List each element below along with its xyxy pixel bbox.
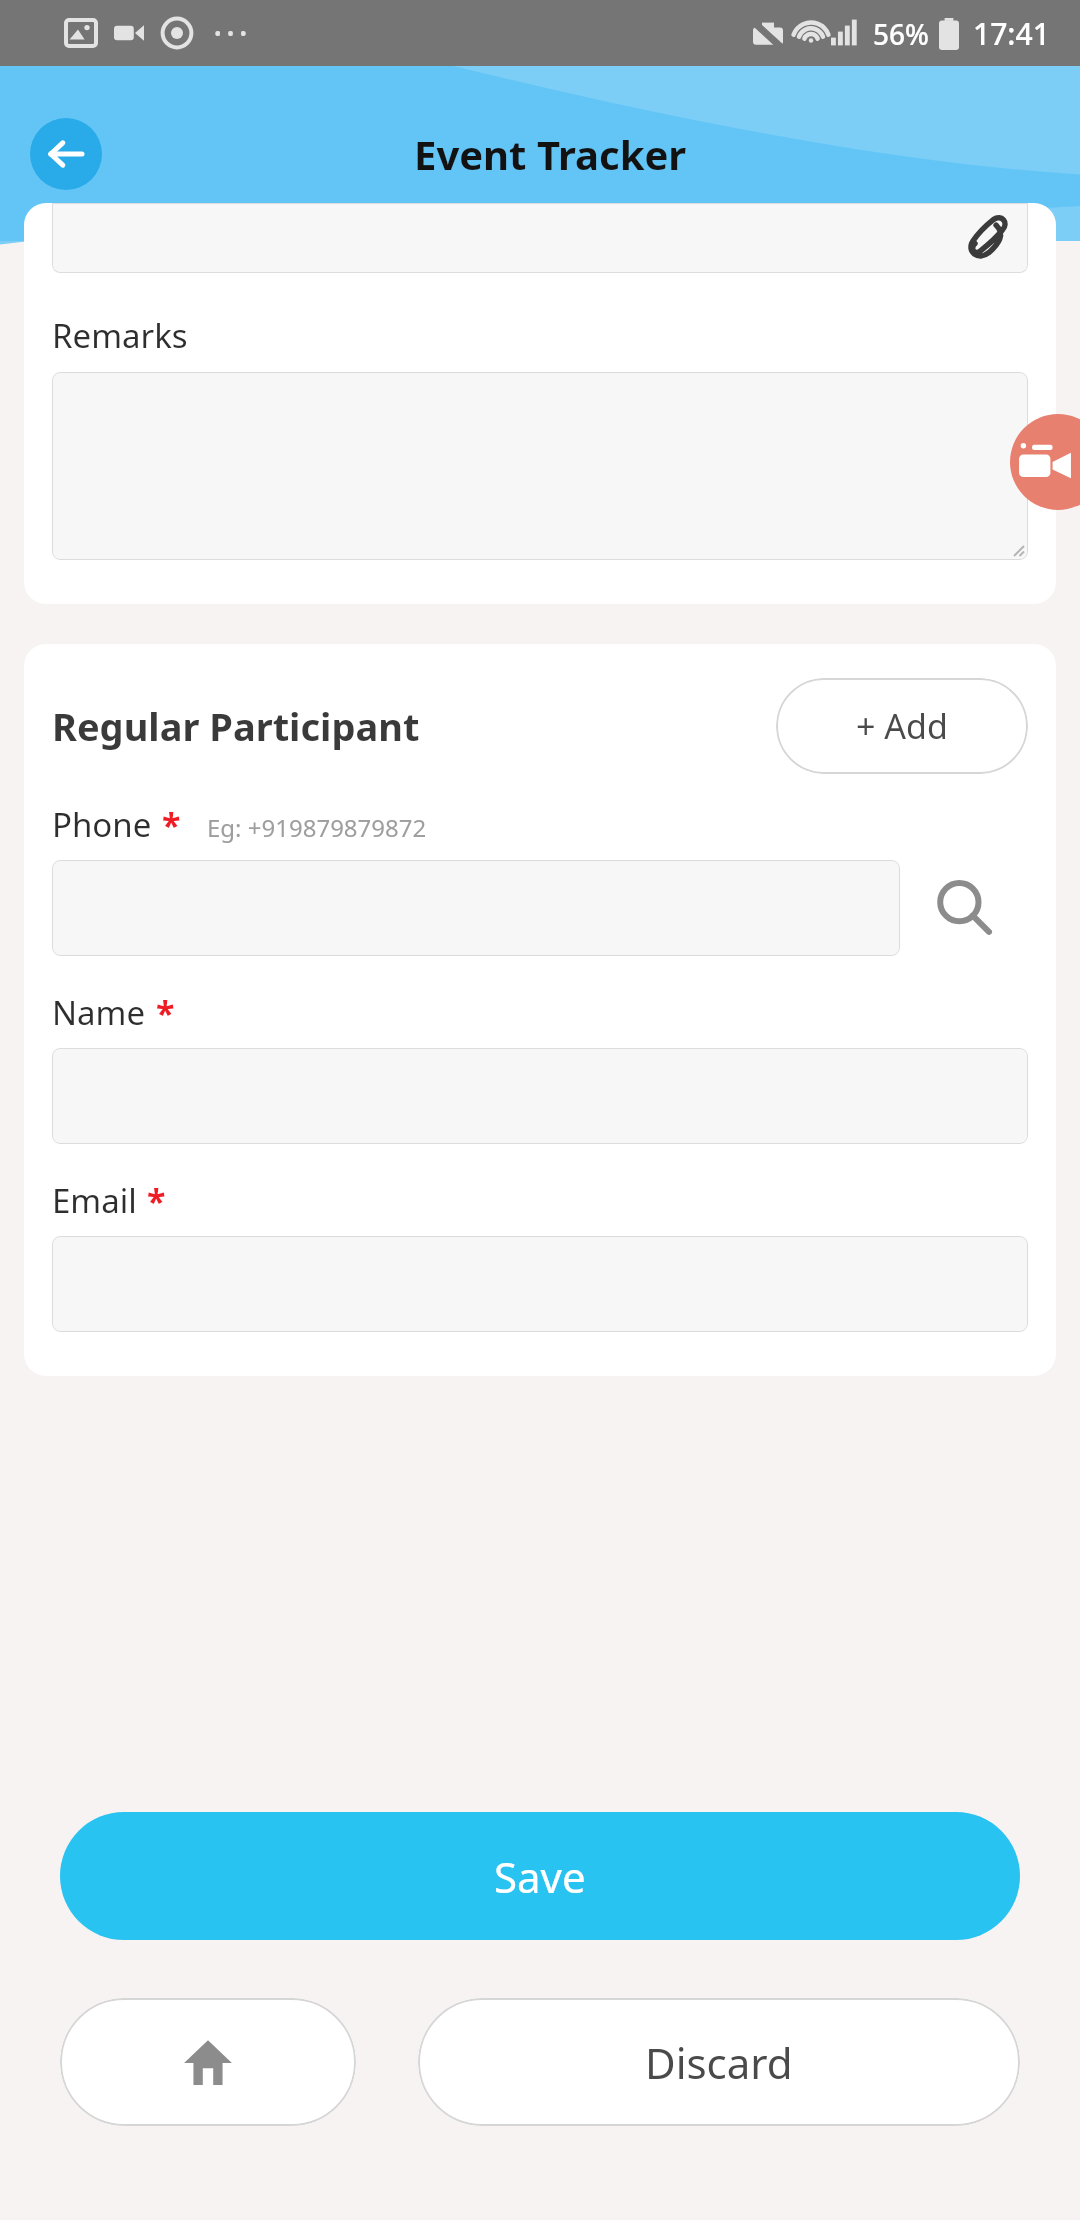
button[interactable] [52,860,900,956]
staticText: Email [52,1178,137,1223]
staticText: * [156,990,175,1036]
staticText: 56% [873,15,929,53]
staticText: 17:41 [973,13,1050,54]
staticText: Name [52,990,146,1035]
staticText: * [162,802,181,848]
button[interactable]: Save [60,1812,1020,1940]
staticText: Discard [645,2034,793,2091]
staticText: • • • [214,20,247,47]
staticText: * [147,1178,166,1224]
staticText: Remarks [52,313,188,358]
button[interactable]: Back [30,118,102,190]
staticText: Save [494,1848,586,1905]
staticText: Regular Participant [52,700,420,752]
button[interactable]: + Add [776,678,1028,774]
button[interactable] [52,1236,1028,1332]
button[interactable]: Discard [418,1998,1020,2126]
button[interactable]: Video [1010,414,1080,510]
button[interactable]: Home [60,1998,356,2126]
staticText: Eg: +919879879872 [207,811,427,844]
button[interactable]: Search [900,860,1028,956]
staticText: Phone [52,802,152,847]
button[interactable]: Attach file [956,208,1016,268]
staticText: + Add [856,703,948,749]
button[interactable] [52,372,1028,560]
staticText: Event Tracker [414,127,687,181]
button[interactable] [52,1048,1028,1144]
